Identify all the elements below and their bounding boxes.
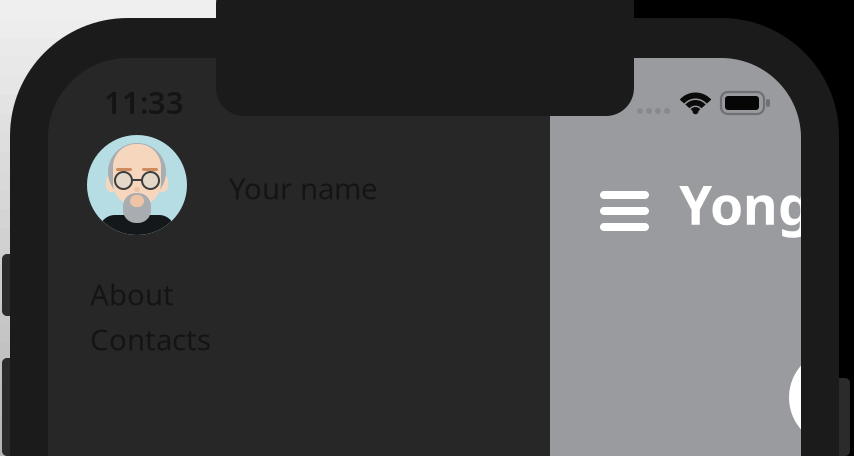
button[interactable]: About [48, 58, 801, 456]
button[interactable]: Profile photo [48, 58, 801, 456]
staticText: About [90, 274, 174, 313]
staticText: Yong [679, 169, 812, 239]
staticText: Contacts [90, 319, 211, 358]
button[interactable]: Contacts [48, 58, 801, 456]
button[interactable]: Menu [48, 58, 801, 456]
staticText: Your name [229, 168, 378, 207]
staticText: 11:33 [104, 82, 184, 122]
